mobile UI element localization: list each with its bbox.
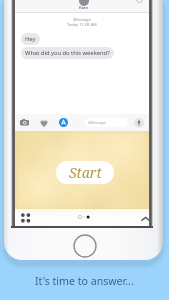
button[interactable]: Home bbox=[73, 234, 97, 258]
staticText: Start bbox=[69, 163, 102, 182]
button[interactable]: Camera bbox=[20, 118, 29, 127]
button[interactable]: Digital Touch bbox=[39, 118, 49, 128]
staticText: Today 11:28 AM bbox=[67, 22, 97, 27]
button[interactable]: Record audio bbox=[134, 118, 144, 128]
staticText: What did you do this weekend? bbox=[25, 49, 110, 57]
button[interactable]: App drawer bbox=[20, 212, 32, 224]
button[interactable]: What did you do this weekend? bbox=[21, 47, 114, 59]
staticText: iMessage bbox=[88, 120, 106, 125]
button[interactable]: Start bbox=[56, 161, 114, 184]
staticText: It's time to answer... bbox=[35, 274, 134, 288]
button[interactable]: Hey bbox=[21, 33, 40, 45]
button[interactable]: Expand bbox=[141, 215, 150, 224]
staticText: iMessage bbox=[73, 17, 91, 22]
button[interactable]: App Store bbox=[59, 118, 68, 127]
staticText: Hey bbox=[25, 35, 36, 43]
button[interactable]: FaceTime bbox=[136, 0, 143, 3]
staticText: Kate bbox=[79, 5, 89, 11]
button[interactable]: iMessage bbox=[85, 118, 128, 127]
